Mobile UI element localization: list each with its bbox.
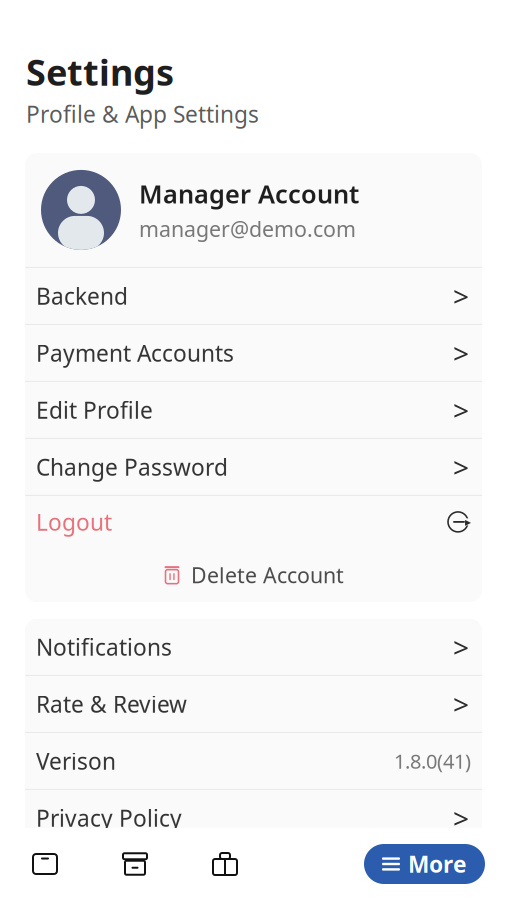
button[interactable]: Notifications xyxy=(25,619,482,675)
staticText: Notifications xyxy=(36,632,172,662)
button[interactable]: Inbox xyxy=(0,836,90,892)
staticText: 1.8.0(41) xyxy=(394,748,471,774)
button[interactable]: Jobs xyxy=(180,836,270,892)
staticText: Privacy Policy xyxy=(36,803,182,833)
button[interactable]: Archive xyxy=(90,836,180,892)
staticText: Manager Account xyxy=(139,177,359,210)
staticText: Backend xyxy=(36,281,128,311)
staticText: > xyxy=(453,334,469,371)
staticText: More xyxy=(408,849,467,879)
staticText: ▸ xyxy=(465,515,471,529)
staticText: Payment Accounts xyxy=(36,338,234,368)
staticText: > xyxy=(453,391,469,428)
button[interactable]: Logout xyxy=(25,496,482,548)
button[interactable]: Privacy Policy xyxy=(25,790,482,846)
staticText: Contact Us xyxy=(36,860,152,890)
button[interactable]: Payment Accounts xyxy=(25,325,482,381)
staticText: Settings xyxy=(26,48,174,96)
button[interactable]: Change Password xyxy=(25,439,482,495)
staticText: > xyxy=(453,628,469,665)
staticText: Verison xyxy=(36,746,116,776)
staticText: Rate & Review xyxy=(36,689,187,719)
staticText: > xyxy=(453,799,469,836)
staticText: Edit Profile xyxy=(36,395,153,425)
staticText: > xyxy=(453,448,469,485)
button[interactable]: Backend xyxy=(25,268,482,324)
staticText: > xyxy=(453,856,469,893)
button[interactable]: Rate & Review xyxy=(25,676,482,732)
staticText: > xyxy=(453,685,469,722)
button[interactable]: More xyxy=(364,844,485,884)
staticText: Change Password xyxy=(36,452,228,482)
staticText: > xyxy=(453,277,469,314)
button[interactable]: Verison xyxy=(25,733,482,789)
button[interactable]: Contact Us xyxy=(25,847,482,900)
staticText: Delete Account xyxy=(191,561,344,589)
button[interactable]: Delete Account xyxy=(25,548,482,602)
staticText: Logout xyxy=(36,507,112,537)
button[interactable]: Edit Profile xyxy=(25,382,482,438)
staticText: Profile & App Settings xyxy=(26,99,259,129)
staticText: manager@demo.com xyxy=(139,215,356,243)
